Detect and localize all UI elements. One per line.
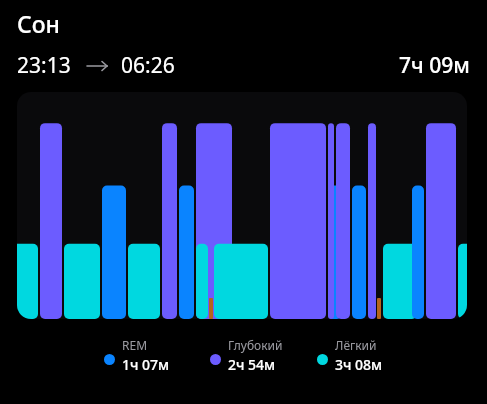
- button[interactable]: Глубокий: [210, 337, 283, 374]
- staticText: 23:13: [17, 51, 71, 80]
- button[interactable]: REM: [104, 337, 170, 374]
- staticText: Лёгкий: [335, 337, 377, 353]
- staticText: 2ч 54м: [228, 355, 276, 374]
- button[interactable]: Лёгкий: [317, 337, 383, 374]
- staticText: Сон: [17, 8, 60, 39]
- staticText: 06:26: [121, 51, 175, 80]
- staticText: Глубокий: [228, 337, 283, 353]
- staticText: 3ч 08м: [335, 355, 383, 374]
- staticText: 7ч 09м: [399, 51, 470, 80]
- staticText: 1ч 07м: [122, 355, 170, 374]
- staticText: REM: [122, 337, 148, 353]
- button[interactable]: [17, 92, 467, 319]
- other: to: [87, 59, 107, 73]
